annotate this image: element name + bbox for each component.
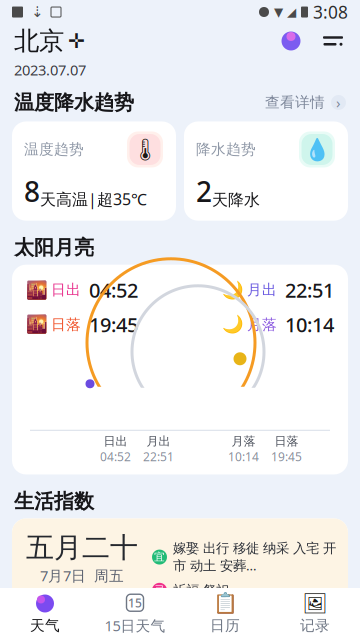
- staticText: 2023.07.07: [14, 60, 86, 79]
- staticText: ▼: [274, 5, 283, 19]
- staticText: 月出: [247, 281, 277, 299]
- staticText: 15日天气: [104, 616, 165, 635]
- button[interactable]: 菜单: [320, 28, 346, 54]
- staticText: 22:51: [285, 277, 334, 303]
- button[interactable]: 15: [90, 593, 180, 635]
- staticText: 月落: [247, 315, 277, 333]
- staticText: 🌇: [26, 280, 48, 300]
- staticText: 2: [196, 172, 212, 210]
- staticText: 太阳月亮: [14, 235, 94, 260]
- staticText: 日历: [210, 616, 240, 634]
- staticText: 宜: [154, 550, 165, 564]
- staticText: 🌙: [222, 315, 244, 334]
- staticText: 查看详情: [265, 93, 325, 111]
- staticText: 3:08: [313, 0, 348, 23]
- staticText: 七七事变纪念日 小暑: [26, 591, 138, 605]
- staticText: 📋: [212, 592, 237, 615]
- staticText: ✛: [68, 30, 85, 52]
- button[interactable]: 五月二十: [12, 518, 348, 620]
- staticText: 日出: [51, 281, 81, 299]
- staticText: 日出: [103, 434, 127, 448]
- staticText: 7月7日 周五: [40, 566, 124, 585]
- staticText: 19:45: [89, 311, 138, 338]
- button[interactable]: 查看详情: [265, 93, 346, 112]
- staticText: 天降水: [212, 190, 260, 210]
- staticText: 🖼: [302, 592, 327, 615]
- staticText: 10:14: [228, 448, 259, 464]
- staticText: 🌙: [222, 280, 244, 300]
- staticText: 北京: [14, 25, 64, 56]
- staticText: 温度趋势: [24, 140, 84, 158]
- staticText: 忌: [154, 584, 165, 597]
- staticText: 8: [24, 172, 40, 210]
- staticText: 月落: [231, 434, 255, 448]
- staticText: 04:52: [89, 277, 138, 303]
- staticText: 降水趋势: [196, 140, 256, 158]
- staticText: 15: [128, 595, 142, 611]
- staticText: 记录: [300, 616, 330, 634]
- staticText: 10:14: [285, 311, 334, 338]
- button[interactable]: 温度趋势: [12, 121, 176, 221]
- staticText: 生活指数: [14, 489, 94, 514]
- staticText: 祈福 祭祀: [173, 582, 229, 598]
- button[interactable]: 🖼: [270, 593, 360, 634]
- staticText: 日落: [274, 434, 298, 448]
- staticText: 💧: [303, 137, 330, 162]
- button[interactable]: 降水趋势: [184, 121, 348, 221]
- staticText: 🌇: [26, 315, 48, 334]
- staticText: 天高温|超35℃: [40, 188, 147, 210]
- staticText: 日落: [51, 315, 81, 333]
- staticText: 月出: [146, 434, 170, 448]
- staticText: ›: [336, 93, 341, 112]
- staticText: 天气: [30, 616, 60, 634]
- staticText: ◢: [287, 5, 296, 19]
- staticText: ⇣: [31, 4, 43, 20]
- staticText: 19:45: [271, 448, 302, 464]
- staticText: 04:52: [100, 448, 131, 464]
- staticText: 🌡: [131, 137, 158, 162]
- button[interactable]: 📋: [180, 593, 270, 634]
- button[interactable]: 北京: [14, 25, 85, 56]
- staticText: 嫁娶 出行 移徙 纳采 入宅 开市 动土 安葬…: [173, 540, 336, 574]
- staticText: 22:51: [143, 448, 174, 464]
- button[interactable]: 天气: [0, 593, 90, 634]
- button[interactable]: 主题: [278, 28, 304, 54]
- staticText: 温度降水趋势: [14, 90, 134, 115]
- staticText: 五月二十: [26, 530, 138, 565]
